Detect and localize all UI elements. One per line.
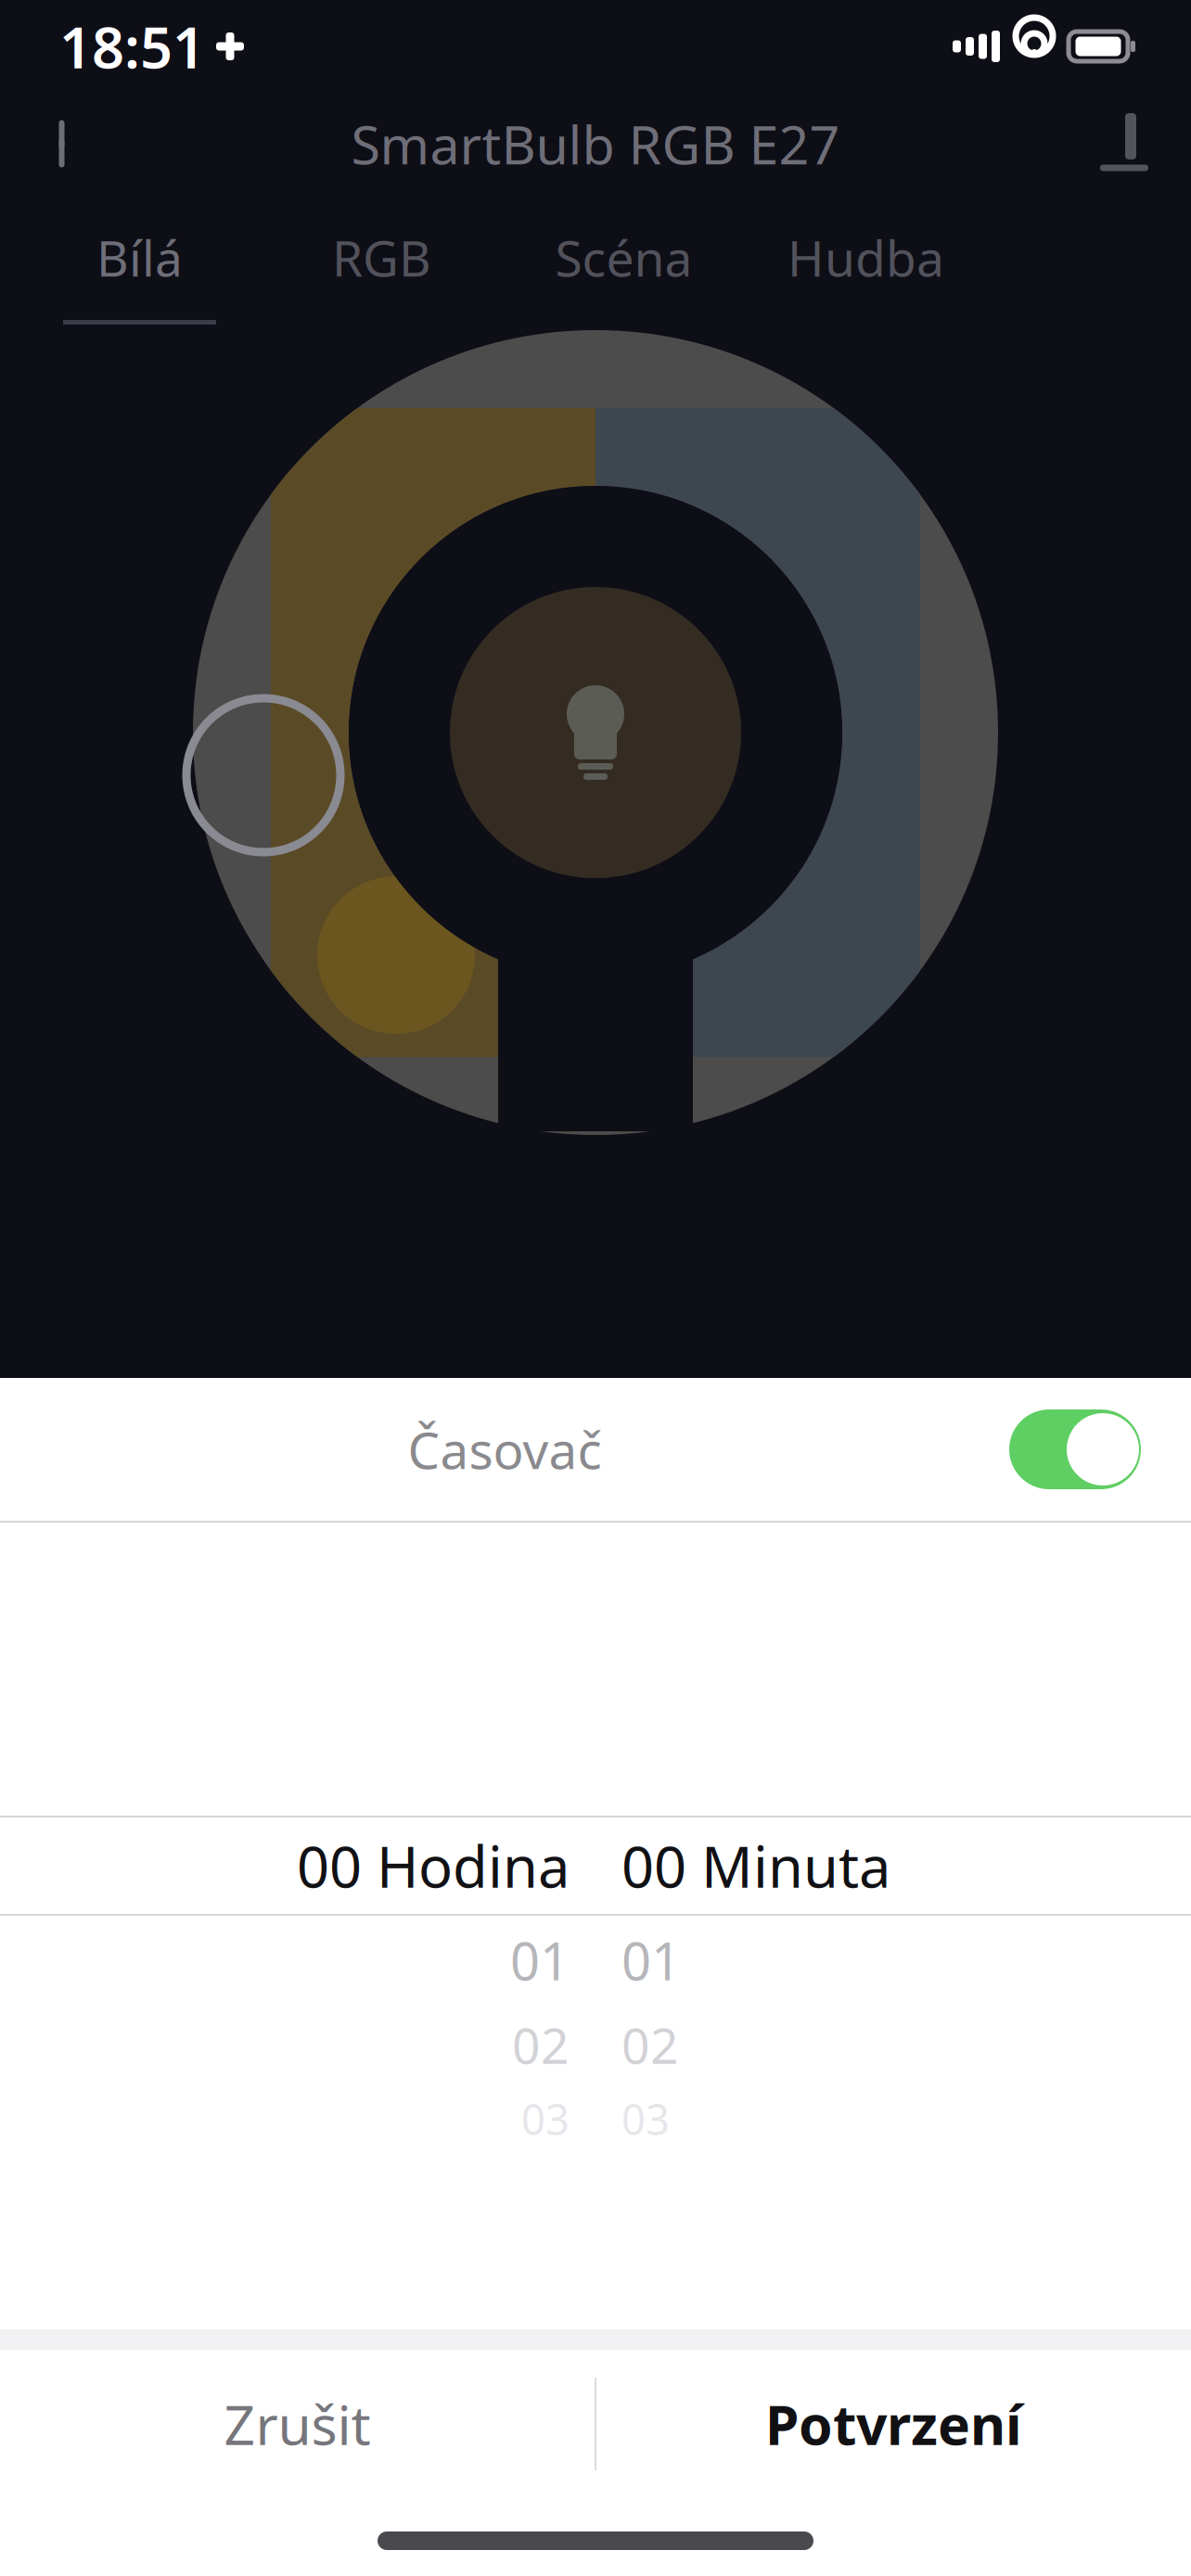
staticText: 03 xyxy=(521,2091,570,2147)
staticText: SmartBulb RGB E27 xyxy=(351,108,840,179)
staticText: 03 xyxy=(621,2091,670,2147)
button[interactable]: Potvrzení xyxy=(596,2350,1191,2498)
staticText: Bílá xyxy=(96,224,183,290)
button[interactable]: Časovač xyxy=(0,1378,1191,1521)
staticText: Hudba xyxy=(788,224,944,290)
staticText: Časovač xyxy=(408,1416,602,1483)
staticText: 18:51 xyxy=(59,9,205,84)
button[interactable]: RGB xyxy=(261,195,503,325)
staticText: 02 xyxy=(512,2012,570,2077)
staticText: Scéna xyxy=(555,224,692,290)
button[interactable]: Hudba xyxy=(745,195,987,325)
button[interactable]: Scéna xyxy=(503,195,745,325)
staticText: Potvrzení xyxy=(765,2388,1022,2460)
button[interactable]: Zrušit xyxy=(0,2350,595,2498)
button[interactable]: Back xyxy=(22,99,111,188)
staticText: 00 Hodina xyxy=(297,1828,570,1903)
button[interactable]: Bílá xyxy=(19,195,261,325)
staticText: 02 xyxy=(621,2012,679,2077)
staticText: Zrušit xyxy=(224,2388,371,2460)
staticText: 01 xyxy=(510,1926,570,1995)
staticText: 01 xyxy=(621,1926,681,1995)
staticText: 00 Minuta xyxy=(621,1828,890,1903)
button[interactable]: Edit xyxy=(1080,99,1169,188)
staticText: RGB xyxy=(332,224,431,290)
